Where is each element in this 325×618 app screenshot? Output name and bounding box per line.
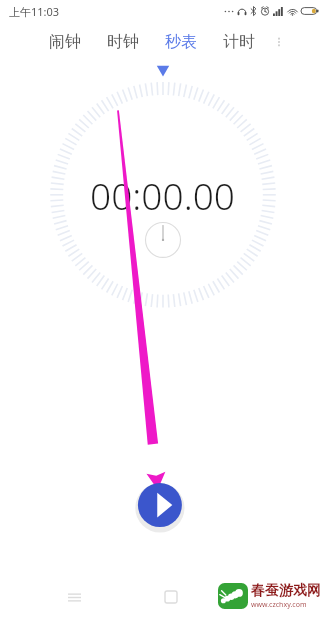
button[interactable]: 时钟 [105,28,141,56]
button[interactable]: Recent apps [57,580,91,614]
button[interactable]: 闹钟 [47,28,83,56]
staticText: 计时 [223,32,255,52]
staticText: 秒表 [165,32,197,52]
staticText: www.czchxy.com [251,600,307,610]
staticText: 春蚕游戏网 [251,582,321,600]
staticText: 上午11:03 [9,4,60,19]
button[interactable]: 秒表 [163,28,199,56]
button[interactable]: More options [267,30,291,54]
button[interactable]: 计时 [221,28,257,56]
button[interactable]: Home [154,580,188,614]
staticText: 时钟 [107,32,139,52]
button[interactable]: Start stopwatch [138,514,182,558]
staticText: 00:00.00 [90,170,235,220]
staticText: 闹钟 [49,32,81,52]
